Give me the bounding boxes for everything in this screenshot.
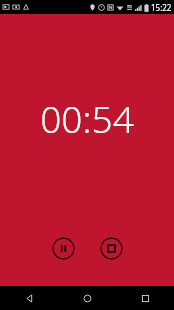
button[interactable]: Home xyxy=(58,286,116,310)
button[interactable]: Recent apps xyxy=(116,286,174,310)
staticText: 15:22 xyxy=(151,2,172,13)
staticText: 00:54 xyxy=(40,93,134,143)
button[interactable]: Stop xyxy=(100,237,123,260)
button[interactable]: Pause xyxy=(52,237,75,260)
button[interactable]: Back xyxy=(0,286,58,310)
